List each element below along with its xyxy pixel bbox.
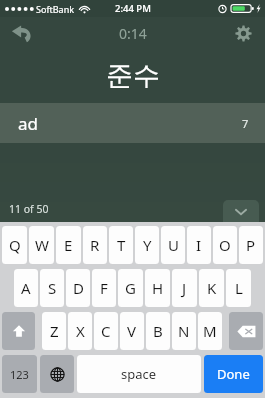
button[interactable]: B <box>146 312 170 350</box>
button[interactable]: Change keyboard language <box>40 355 74 393</box>
button[interactable]: H <box>145 269 170 307</box>
staticText: G <box>125 278 136 298</box>
button[interactable]: ad <box>0 103 265 143</box>
button[interactable]: Z <box>42 312 66 350</box>
button[interactable]: F <box>92 269 116 307</box>
staticText: J <box>182 278 187 298</box>
button[interactable]: Q <box>2 226 27 264</box>
button[interactable]: Backspace <box>229 312 263 350</box>
staticText: T <box>117 235 126 255</box>
staticText: E <box>64 235 73 255</box>
button[interactable]: space <box>77 355 201 393</box>
staticText: 준수 <box>106 59 160 93</box>
button[interactable]: J <box>172 269 197 307</box>
button[interactable]: N <box>172 312 196 350</box>
button[interactable]: W <box>29 226 54 264</box>
staticText: 123 <box>10 367 29 382</box>
staticText: O <box>219 235 231 255</box>
button[interactable]: D <box>66 269 90 307</box>
button[interactable]: A <box>14 269 38 307</box>
button[interactable]: Y <box>135 226 159 264</box>
staticText: W <box>35 235 49 255</box>
staticText: A <box>21 278 31 298</box>
staticText: D <box>73 278 84 298</box>
staticText: Q <box>9 235 21 255</box>
button[interactable]: U <box>161 226 185 264</box>
staticText: K <box>207 278 217 298</box>
staticText: Y <box>143 235 152 255</box>
button[interactable]: P <box>239 226 263 264</box>
staticText: SoftBank <box>36 3 74 15</box>
staticText: 7 <box>242 116 249 131</box>
staticText: Done <box>217 365 250 383</box>
staticText: Z <box>50 321 59 341</box>
staticText: B <box>153 321 163 341</box>
button[interactable]: Hide keyboard <box>223 200 259 226</box>
staticText: F <box>100 278 108 298</box>
staticText: N <box>178 321 190 341</box>
staticText: space <box>121 365 157 383</box>
button[interactable]: Done <box>204 355 263 393</box>
button[interactable]: X <box>68 312 92 350</box>
button[interactable]: I <box>187 226 211 264</box>
staticText: ad <box>18 112 38 135</box>
button[interactable]: G <box>118 269 143 307</box>
button[interactable]: C <box>94 312 118 350</box>
button[interactable]: 123 <box>2 355 37 393</box>
staticText: L <box>235 278 243 298</box>
staticText: 11 of 50 <box>9 202 49 216</box>
button[interactable]: Settings <box>221 17 265 49</box>
button[interactable]: M <box>198 312 222 350</box>
staticText: 2:44 PM <box>115 2 151 15</box>
staticText: 0:14 <box>119 24 147 43</box>
button[interactable]: Shift <box>2 312 35 350</box>
staticText: P <box>246 235 256 255</box>
button[interactable]: L <box>226 269 251 307</box>
button[interactable]: R <box>83 226 107 264</box>
staticText: R <box>90 235 100 255</box>
button[interactable]: S <box>40 269 64 307</box>
staticText: V <box>127 321 137 341</box>
button[interactable]: O <box>213 226 237 264</box>
staticText: M <box>203 321 217 341</box>
button[interactable]: K <box>199 269 224 307</box>
button[interactable]: E <box>56 226 81 264</box>
staticText: H <box>152 278 164 298</box>
button[interactable]: Back <box>0 17 44 49</box>
staticText: C <box>101 321 111 341</box>
staticText: U <box>168 235 179 255</box>
staticText: I <box>196 235 202 255</box>
staticText: S <box>48 278 57 298</box>
staticText: X <box>76 321 85 341</box>
button[interactable]: T <box>109 226 133 264</box>
button[interactable]: V <box>120 312 144 350</box>
